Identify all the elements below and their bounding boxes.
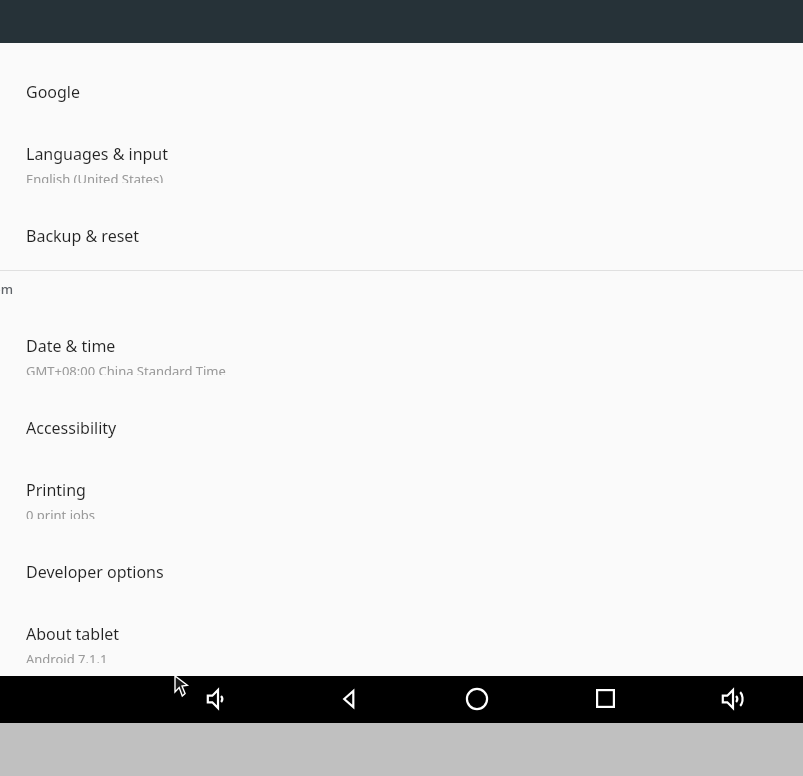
staticText: Languages & input [26,143,169,165]
staticText: Android 7.1.1 [26,650,108,663]
staticText: Backup & reset [26,225,140,247]
staticText: Accessibility [26,417,117,439]
staticText: GMT+08:00 China Standard Time [26,362,226,375]
staticText: Printing [26,479,86,501]
staticText: Google [26,81,81,103]
button[interactable]: Volume down [194,675,242,722]
staticText: Developer options [26,561,164,583]
button[interactable]: Printing [0,467,803,519]
button[interactable]: Date & time [0,323,803,375]
staticText: 0 print jobs [26,506,96,519]
button[interactable]: Developer options [0,549,803,587]
button[interactable]: Backup & reset [0,213,803,251]
staticText: About tablet [26,623,120,645]
button[interactable]: Recent apps [581,675,629,722]
staticText: English (United States) [26,170,164,183]
button[interactable]: Accessibility [0,405,803,443]
staticText: System [0,280,14,298]
button[interactable]: About tablet [0,611,803,663]
button[interactable]: Languages & input [0,131,803,183]
button[interactable]: Back [325,675,373,722]
button[interactable]: Volume up [709,675,757,722]
button[interactable]: Home [453,675,501,722]
staticText: Date & time [26,335,116,357]
button[interactable]: Google [0,69,803,107]
